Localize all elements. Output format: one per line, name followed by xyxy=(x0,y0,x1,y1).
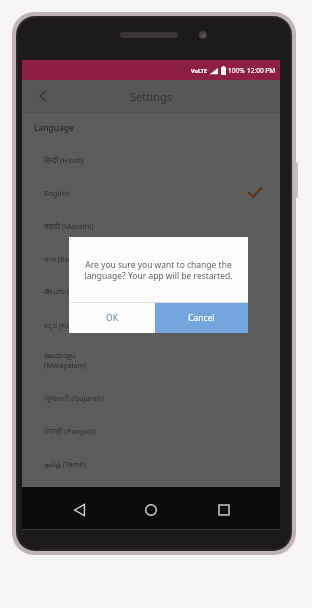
staticText: Language xyxy=(34,122,74,134)
staticText: मराठी (Marathi) xyxy=(44,221,94,231)
staticText: ਪੰਜਾਬੀ (Punjabi) xyxy=(44,426,96,436)
staticText: OK xyxy=(106,312,118,324)
staticText: English xyxy=(44,188,70,198)
staticText: বাংলা (Bengali) xyxy=(44,254,89,264)
button[interactable]: Recents xyxy=(208,494,240,526)
button[interactable]: Back xyxy=(30,83,56,109)
button[interactable]: Home xyxy=(135,494,167,526)
button[interactable]: മലയാളം (Malayalam) xyxy=(22,341,280,381)
button[interactable]: தமிழ் (Tamil) xyxy=(22,447,280,480)
staticText: ગુજરાતી (Gujarati) xyxy=(44,393,104,403)
staticText: Settings xyxy=(130,89,172,104)
button[interactable]: ગુજરાતી (Gujarati) xyxy=(22,381,280,414)
button[interactable]: OK xyxy=(69,303,155,333)
button[interactable]: मराठी (Marathi) xyxy=(22,209,280,242)
staticText: 12:00 PM xyxy=(247,66,276,75)
staticText: VoLTE xyxy=(191,67,208,74)
button[interactable]: Cancel xyxy=(155,303,248,333)
button[interactable]: বাংলা (Bengali) xyxy=(22,242,280,275)
button[interactable]: English xyxy=(22,176,280,209)
staticText: 100% xyxy=(228,66,245,75)
button[interactable]: Back xyxy=(63,494,95,526)
staticText: Cancel xyxy=(188,312,215,324)
staticText: हिन्दी (Hindi) xyxy=(44,155,84,165)
staticText: తెలుగు (Telugu) xyxy=(44,286,95,298)
staticText: Are you sure you want to change the lang… xyxy=(79,259,238,281)
button[interactable]: हिन्दी (Hindi) xyxy=(22,143,280,176)
staticText: ಕನ್ನಡ (Kannada) xyxy=(44,320,95,330)
button[interactable]: తెలుగు (Telugu) xyxy=(22,275,280,308)
button[interactable]: ಕನ್ನಡ (Kannada) xyxy=(22,308,280,341)
staticText: தமிழ் (Tamil) xyxy=(44,459,86,469)
staticText: മലയാളം (Malayalam) xyxy=(44,352,87,370)
button[interactable]: ਪੰਜਾਬੀ (Punjabi) xyxy=(22,414,280,447)
